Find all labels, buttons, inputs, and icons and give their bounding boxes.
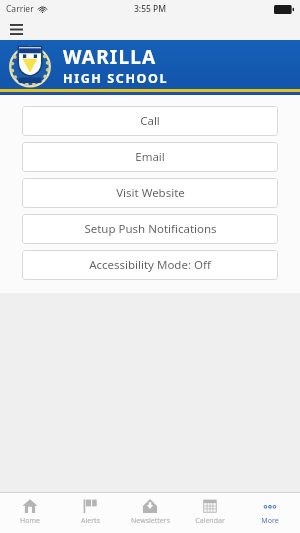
button[interactable]: Alerts bbox=[60, 493, 120, 533]
staticText: Email bbox=[135, 149, 165, 165]
staticText: Home bbox=[20, 516, 40, 526]
button[interactable]: More bbox=[240, 493, 300, 533]
button[interactable]: Accessibility Mode: Off bbox=[22, 250, 278, 280]
button[interactable]: Menu bbox=[6, 19, 26, 39]
button[interactable]: Call bbox=[22, 106, 278, 136]
staticText: 3:55 PM bbox=[134, 3, 167, 15]
staticText: WARILLA bbox=[63, 44, 157, 70]
staticText: More bbox=[261, 516, 279, 526]
button[interactable]: Setup Push Notifications bbox=[22, 214, 278, 244]
button[interactable]: Calendar bbox=[180, 493, 240, 533]
staticText: Call bbox=[140, 113, 160, 129]
staticText: HIGH SCHOOL bbox=[63, 70, 169, 87]
staticText: Visit Website bbox=[116, 185, 185, 201]
staticText: Alerts bbox=[81, 516, 100, 526]
button[interactable]: Newsletters bbox=[120, 493, 180, 533]
staticText: Carrier bbox=[6, 3, 34, 15]
staticText: Calendar bbox=[195, 516, 225, 526]
staticText: Accessibility Mode: Off bbox=[89, 257, 211, 273]
button[interactable]: Visit Website bbox=[22, 178, 278, 208]
button[interactable]: Email bbox=[22, 142, 278, 172]
staticText: Newsletters bbox=[131, 516, 170, 526]
button[interactable]: Home bbox=[0, 493, 60, 533]
staticText: Setup Push Notifications bbox=[84, 221, 217, 237]
